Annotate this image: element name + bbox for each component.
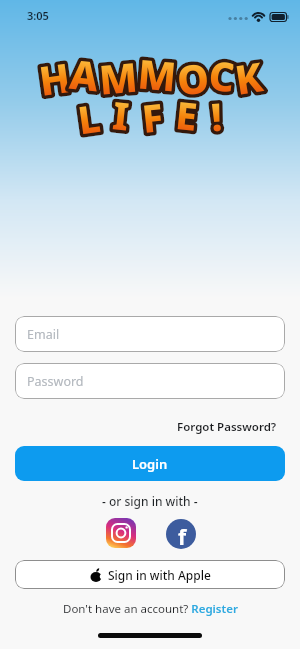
- staticText: A: [67, 46, 102, 102]
- button[interactable]: [106, 518, 136, 548]
- staticText: K: [231, 48, 266, 106]
- button[interactable]: Email: [15, 316, 285, 352]
- button[interactable]: Forgot Password?: [177, 419, 277, 435]
- staticText: F: [139, 90, 166, 144]
- staticText: K: [231, 48, 266, 106]
- staticText: !: [209, 90, 224, 142]
- staticText: C: [206, 47, 238, 103]
- staticText: L: [74, 91, 103, 145]
- staticText: M: [97, 48, 140, 106]
- staticText: I: [110, 88, 132, 142]
- staticText: Login: [132, 455, 168, 473]
- staticText: M: [136, 45, 179, 103]
- staticText: O: [174, 49, 212, 106]
- staticText: E: [173, 88, 201, 142]
- staticText: H: [35, 49, 74, 107]
- staticText: E: [173, 88, 201, 142]
- staticText: Email: [27, 326, 60, 343]
- button[interactable]: Password: [15, 363, 285, 399]
- staticText: I: [110, 88, 132, 142]
- button[interactable]: Login: [15, 446, 285, 481]
- button[interactable]: Don't have an account? Register: [63, 601, 238, 617]
- staticText: !: [209, 90, 224, 142]
- staticText: - or sign in with -: [102, 493, 198, 509]
- staticText: C: [206, 47, 238, 103]
- staticText: L: [74, 91, 103, 145]
- staticText: 3:05: [27, 8, 49, 23]
- staticText: H: [35, 49, 74, 107]
- button[interactable]: f: [166, 519, 196, 549]
- staticText: O: [174, 49, 212, 106]
- staticText: M: [97, 48, 140, 106]
- staticText: Password: [27, 373, 84, 390]
- staticText: F: [139, 90, 166, 144]
- staticText: A: [67, 46, 102, 102]
- staticText: f: [178, 523, 187, 549]
- staticText: Sign in with Apple: [108, 567, 211, 583]
- staticText: M: [136, 45, 179, 103]
- button[interactable]: Sign in with Apple: [15, 560, 285, 589]
